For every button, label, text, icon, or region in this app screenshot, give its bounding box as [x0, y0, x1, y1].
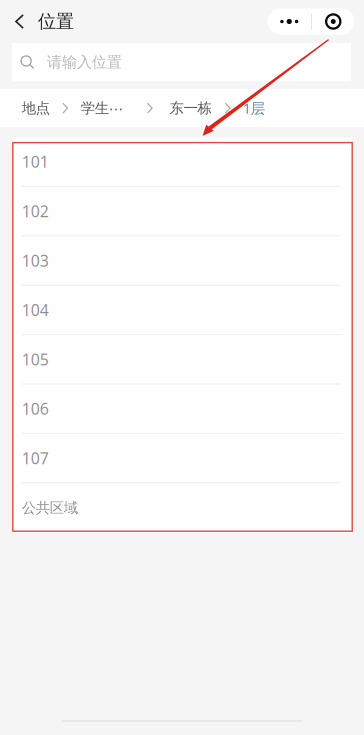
button[interactable]: 102 — [12, 187, 352, 236]
button[interactable]: 104 — [12, 286, 352, 335]
staticText: 地点 — [22, 99, 50, 117]
staticText: 1层 — [243, 98, 265, 118]
button[interactable]: 东一栋 — [153, 89, 225, 127]
staticText: 101 — [22, 151, 49, 172]
button[interactable]: 1层 — [231, 89, 291, 127]
button[interactable]: 107 — [12, 434, 352, 483]
staticText: 104 — [22, 299, 49, 321]
button[interactable]: 103 — [12, 236, 352, 286]
staticText: 公共区域 — [22, 499, 78, 517]
button[interactable]: 105 — [12, 335, 352, 384]
button[interactable]: Mini program menu — [267, 8, 354, 34]
staticText: 107 — [22, 447, 49, 469]
staticText: 请输入位置 — [47, 53, 122, 72]
button[interactable]: Back — [0, 0, 38, 43]
staticText: 105 — [22, 348, 49, 370]
button[interactable]: 学生⋯ — [68, 89, 147, 127]
button[interactable]: 地点 — [22, 89, 62, 127]
staticText: 东一栋 — [169, 99, 211, 117]
staticText: 102 — [22, 200, 49, 222]
button[interactable]: 106 — [12, 384, 352, 434]
staticText: 106 — [22, 398, 49, 419]
staticText: 学生⋯ — [81, 99, 123, 117]
staticText: 103 — [22, 250, 49, 271]
button[interactable]: 公共区域 — [12, 483, 352, 533]
staticText: 位置 — [38, 10, 74, 33]
button[interactable]: 101 — [12, 137, 352, 187]
button[interactable]: 请输入位置 — [12, 43, 351, 81]
